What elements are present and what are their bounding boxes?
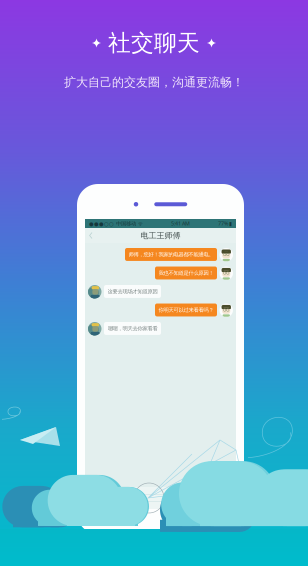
button[interactable]: 我也不知道是什么原因！	[155, 266, 217, 279]
staticText: 电工王师傅	[140, 231, 180, 240]
button[interactable]: 你明天可以过来看看吗？	[155, 303, 217, 316]
staticText: ●●●○○ 中国移动 ᯤ	[89, 220, 143, 227]
button[interactable]: Back	[85, 228, 97, 242]
staticText: 77% ▮	[218, 220, 232, 227]
staticText: 我也不知道是什么原因！	[158, 270, 213, 276]
staticText: 扩大自己的交友圈，沟通更流畅！	[64, 75, 244, 90]
staticText: 社交聊天	[108, 29, 200, 57]
button[interactable]: 师傅，您好！我家的电器都不能通电。	[125, 248, 217, 261]
staticText: 5:41 AM	[171, 220, 190, 227]
button[interactable]: 嗯嗯，明天去你家看看	[104, 322, 161, 335]
staticText: 嗯嗯，明天去你家看看	[107, 325, 157, 332]
staticText: 师傅，您好！我家的电器都不能通电。	[128, 251, 213, 258]
staticText: 你明天可以过来看看吗？	[158, 307, 213, 313]
staticText: 这要去现场才知道原因	[107, 288, 157, 295]
button[interactable]: 这要去现场才知道原因	[104, 285, 161, 298]
